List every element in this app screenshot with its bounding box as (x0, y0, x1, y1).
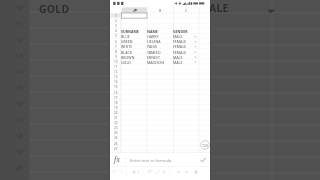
staticText: 24 (114, 131, 118, 135)
staticText: BLACK (121, 50, 132, 55)
staticText: 16 (114, 91, 118, 95)
button[interactable]: Next (183, 167, 190, 180)
staticText: FEMALE (173, 44, 187, 49)
staticText: BLUE (121, 34, 130, 39)
staticText: FEMALE (173, 39, 187, 44)
staticText: 18 (114, 101, 118, 105)
staticText: 10 (16, 4, 23, 11)
staticText: WHITE (121, 44, 133, 49)
staticText: 21 (114, 116, 118, 120)
staticText: 27 (114, 147, 118, 151)
staticText: MALE (173, 55, 183, 60)
staticText: 15 (16, 84, 23, 91)
staticText: 1 (115, 14, 117, 18)
staticText: 8 (115, 50, 117, 54)
staticText: GENDER (173, 29, 188, 34)
staticText: 4 (115, 29, 117, 33)
staticText: 14 (114, 80, 118, 84)
staticText: 22 (114, 121, 118, 125)
staticText: B (159, 8, 162, 13)
staticText: 15 (114, 85, 118, 89)
staticText: 7 (115, 45, 117, 49)
staticText: 2 (115, 19, 117, 23)
button[interactable]: Previous (176, 167, 183, 180)
staticText: A (133, 8, 136, 13)
staticText: 13 (16, 52, 23, 59)
staticText: MALE (173, 34, 183, 39)
staticText: 3 (115, 24, 117, 28)
staticText: MADISON (147, 60, 164, 65)
staticText: HARRY (147, 34, 159, 39)
button[interactable]: Accept (196, 153, 210, 167)
button[interactable]: Text format (133, 167, 140, 180)
button[interactable]: Insert function (110, 153, 125, 167)
button[interactable]: Alignment (147, 167, 154, 180)
staticText: 25 (114, 136, 118, 140)
staticText: 13 (114, 75, 118, 79)
staticText: GOLD (39, 2, 70, 16)
staticText: ERNEST (147, 55, 160, 60)
button[interactable]: Sum (193, 167, 200, 180)
button[interactable]: Insert (161, 167, 168, 180)
staticText: 20 (16, 164, 23, 171)
button[interactable]: Edit (155, 167, 162, 180)
staticText: TAMIKO (147, 50, 161, 55)
staticText: fx (114, 155, 121, 165)
staticText: C (185, 8, 188, 13)
staticText: 12 (114, 70, 118, 74)
staticText: 10 (114, 60, 118, 64)
staticText: PAIGE (147, 44, 158, 49)
button[interactable]: Number keypad (200, 140, 210, 150)
staticText: 12 (16, 36, 23, 43)
staticText: MALE (173, 60, 183, 65)
staticText: SURNAME (121, 29, 139, 34)
staticText: FEMALE (173, 50, 187, 55)
staticText: 14 (16, 68, 23, 75)
staticText: 5 (115, 34, 117, 38)
staticText: 17 (114, 96, 118, 100)
staticText: 16 (16, 100, 23, 107)
staticText: 11 (16, 20, 23, 27)
staticText: 18 (16, 132, 23, 139)
staticText: 123 (202, 143, 209, 148)
staticText: 11 (114, 65, 118, 69)
staticText: GOLD (121, 60, 131, 65)
staticText: 23 (114, 126, 118, 130)
staticText: HELENA (147, 39, 161, 44)
staticText: Enter text or formula (130, 158, 172, 164)
staticText: BROWN (121, 55, 135, 60)
staticText: ALE (209, 1, 229, 15)
staticText: GREEN (121, 39, 133, 44)
staticText: 19 (114, 106, 118, 110)
staticText: 6 (115, 40, 117, 44)
staticText: 20 (114, 111, 118, 115)
staticText: 9 (115, 55, 117, 59)
staticText: NAME (147, 29, 158, 34)
staticText: 17 (16, 116, 23, 123)
staticText: 19 (16, 148, 23, 155)
button[interactable]: Undo (112, 167, 119, 180)
button[interactable]: Redo (116, 167, 123, 180)
staticText: 26 (114, 142, 118, 146)
